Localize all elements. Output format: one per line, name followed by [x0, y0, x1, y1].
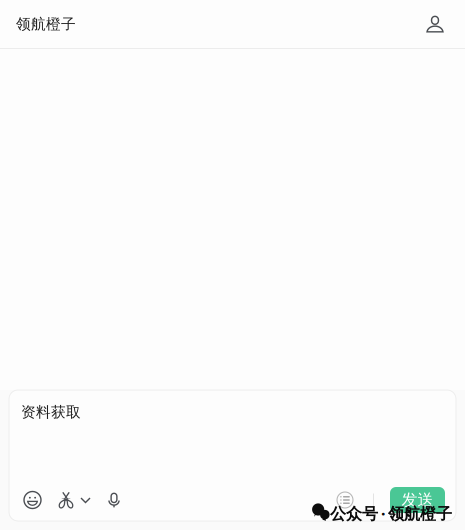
button[interactable]: Voice input	[97, 486, 131, 514]
button[interactable]: Account	[420, 9, 450, 39]
staticText: 发送	[401, 490, 433, 510]
staticText: 领航橙子	[16, 15, 76, 33]
button[interactable]: 发送	[390, 487, 445, 513]
button[interactable]: Emoji	[14, 486, 51, 514]
staticText: 公众号 · 领航橙子	[330, 503, 452, 524]
button[interactable]: Menu	[333, 486, 357, 514]
button[interactable]: Shortcuts	[51, 486, 97, 514]
staticText: 资料获取	[21, 403, 81, 421]
